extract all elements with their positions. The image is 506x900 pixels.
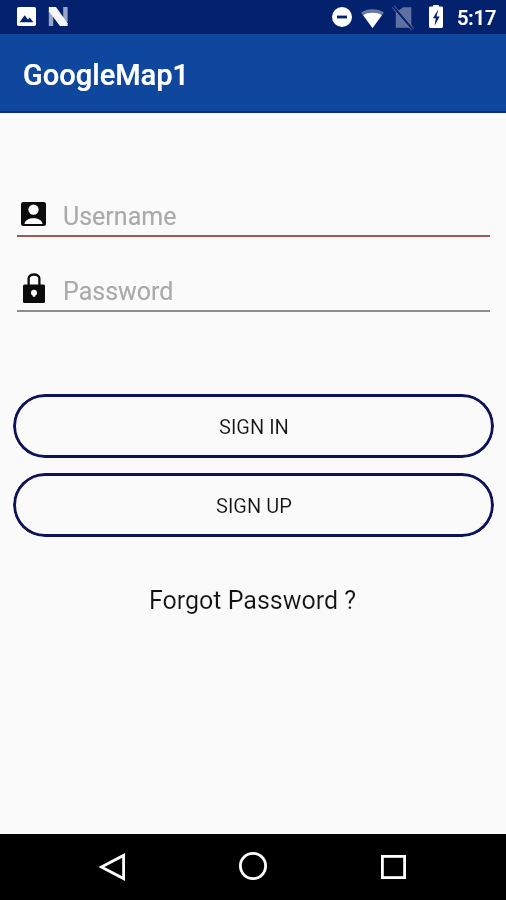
staticText: GoogleMap1	[23, 58, 190, 92]
button[interactable]: Password	[17, 269, 490, 312]
staticText: Password	[63, 277, 174, 306]
button[interactable]: SIGN UP	[13, 473, 494, 537]
staticText: SIGN UP	[216, 494, 292, 517]
staticText: Forgot Password ?	[149, 586, 357, 615]
staticText: Username	[63, 202, 177, 231]
button[interactable]: Home	[229, 842, 277, 890]
button[interactable]: SIGN IN	[13, 394, 494, 458]
button[interactable]: Forgot Password ?	[139, 578, 367, 622]
button[interactable]: Username	[17, 194, 490, 237]
staticText: 5:17	[457, 6, 497, 29]
staticText: SIGN IN	[219, 415, 289, 438]
button[interactable]: Recent apps	[369, 843, 417, 891]
button[interactable]: Back	[88, 843, 136, 891]
